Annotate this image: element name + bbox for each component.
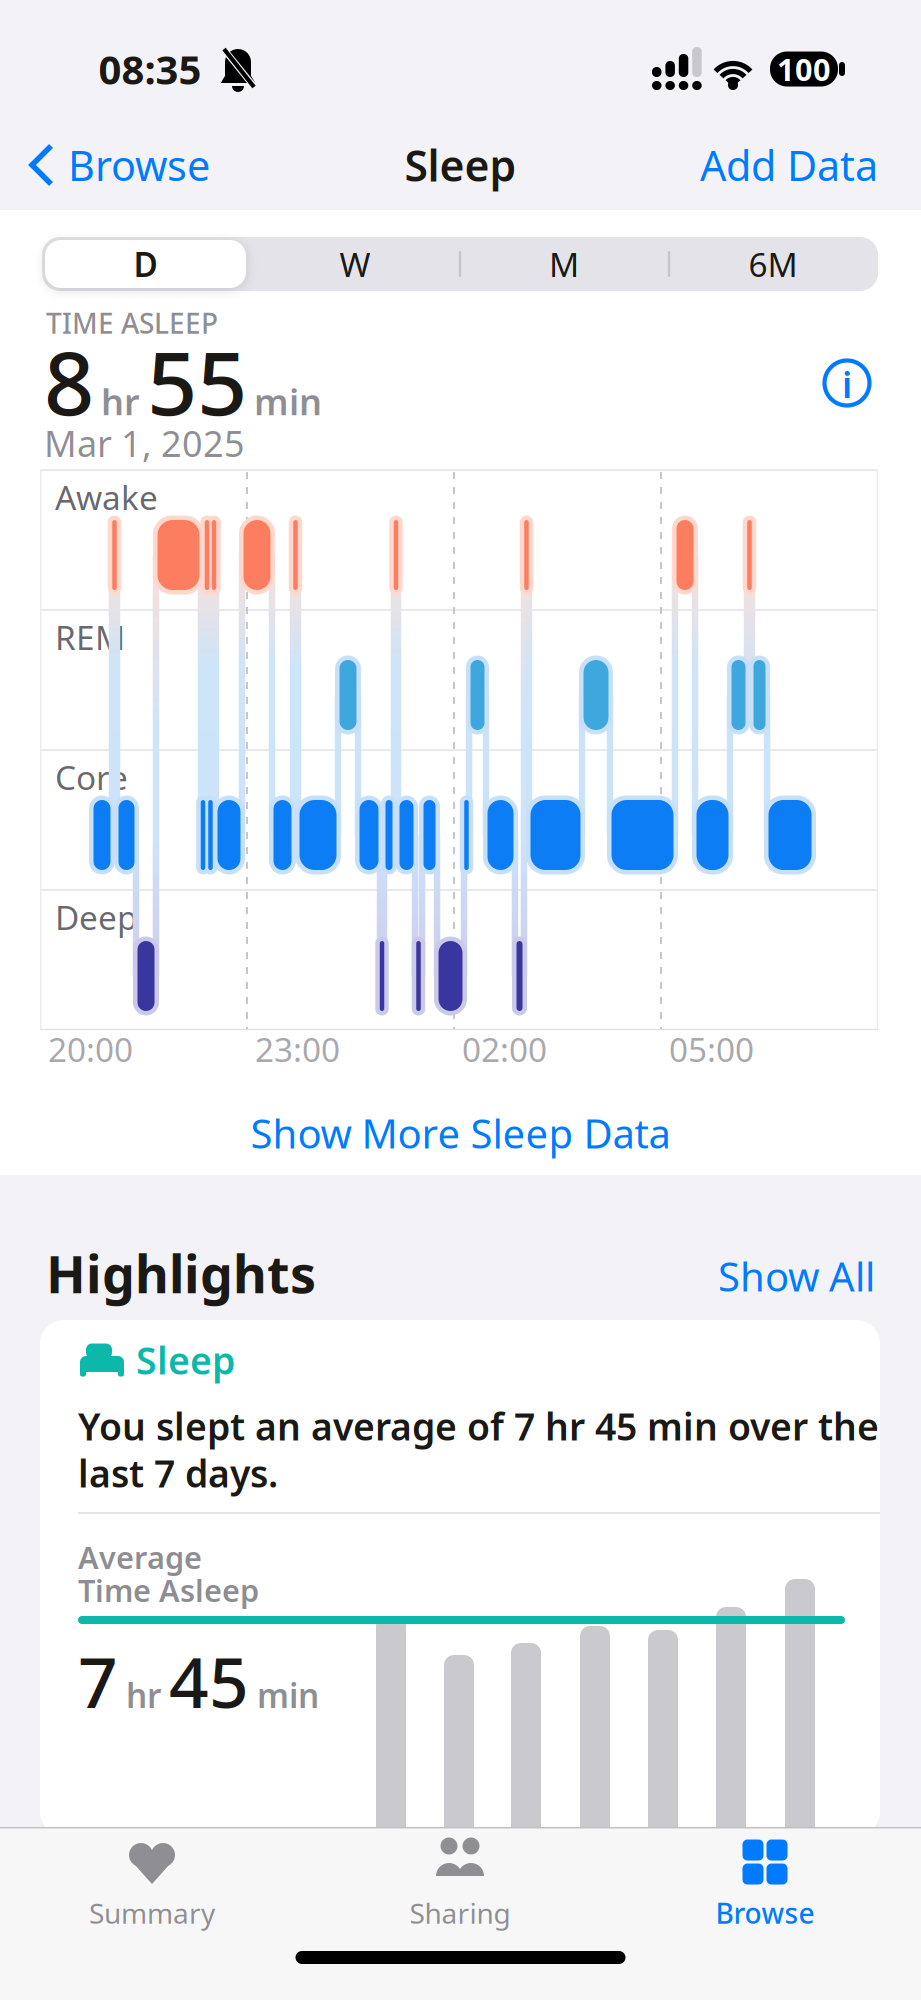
- staticText: W: [339, 242, 370, 286]
- staticText: 05:00: [669, 1027, 754, 1071]
- staticText: hr: [126, 1673, 161, 1717]
- staticText: 8: [44, 323, 94, 439]
- staticText: Browse: [68, 138, 210, 192]
- staticText: 6M: [748, 242, 797, 286]
- staticText: M: [549, 242, 579, 286]
- staticText: You slept an average of 7 hr 45 min over…: [78, 1401, 879, 1451]
- staticText: Sleep: [404, 137, 516, 193]
- staticText: Average: [78, 1537, 202, 1577]
- staticText: Time Asleep: [78, 1570, 259, 1610]
- staticText: 55: [147, 323, 247, 439]
- staticText: TIME ASLEEP: [46, 304, 218, 342]
- staticText: Sharing: [409, 1894, 510, 1932]
- staticText: min: [254, 377, 322, 425]
- staticText: 100: [777, 49, 831, 89]
- staticText: 20:00: [48, 1027, 133, 1071]
- staticText: Mar 1, 2025: [44, 419, 245, 467]
- staticText: 45: [169, 1635, 249, 1727]
- staticText: Awake: [55, 475, 158, 519]
- staticText: 23:00: [255, 1027, 340, 1071]
- staticText: 02:00: [462, 1027, 547, 1071]
- staticText: min: [257, 1673, 319, 1717]
- staticText: Highlights: [46, 1238, 316, 1308]
- staticText: Summary: [89, 1894, 215, 1932]
- staticText: Sleep: [136, 1335, 235, 1385]
- staticText: Browse: [715, 1894, 814, 1932]
- staticText: Show All: [718, 1249, 875, 1302]
- staticText: i: [842, 360, 852, 408]
- staticText: D: [133, 242, 157, 286]
- staticText: 7: [78, 1635, 118, 1727]
- staticText: Show More Sleep Data: [250, 1106, 670, 1159]
- staticText: last 7 days.: [78, 1448, 278, 1498]
- staticText: 08:35: [98, 42, 201, 95]
- staticText: Add Data: [700, 138, 878, 192]
- staticText: REM: [55, 615, 125, 659]
- staticText: hr: [101, 377, 140, 425]
- staticText: Deep: [55, 895, 138, 939]
- staticText: Core: [55, 755, 128, 799]
